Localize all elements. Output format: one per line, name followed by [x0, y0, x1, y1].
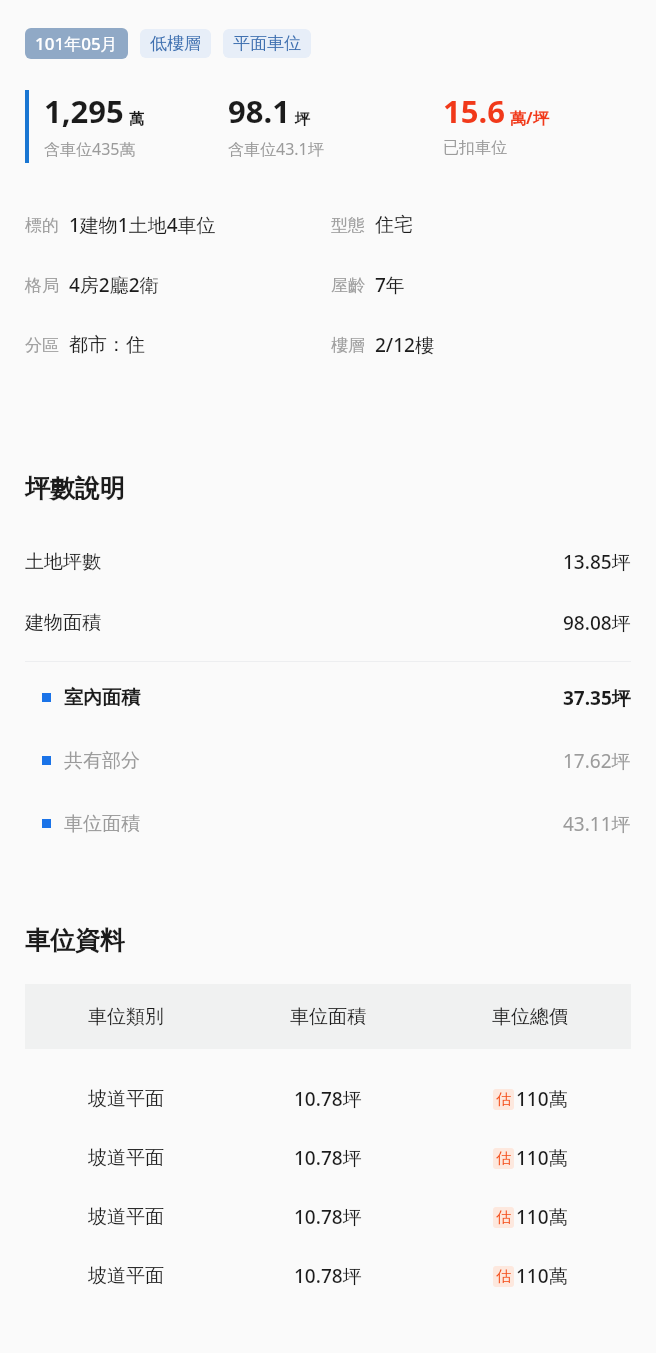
staticText: 4房2廳2衛 [69, 272, 159, 298]
staticText: 分區 [25, 335, 59, 356]
staticText: 7年 [375, 272, 405, 298]
staticText: 屋齡 [331, 275, 365, 296]
staticText: 萬/坪 [510, 107, 549, 129]
button[interactable]: 坡道平面 [25, 1246, 631, 1305]
staticText: 110萬 [516, 1204, 568, 1230]
staticText: 坪數說明 [25, 473, 125, 504]
button[interactable]: 平面車位 [223, 29, 311, 58]
staticText: 15.6 [443, 90, 505, 132]
staticText: 車位資料 [25, 925, 125, 956]
staticText: 共有部分 [64, 749, 140, 773]
staticText: 10.78坪 [294, 1263, 362, 1289]
button[interactable]: 坡道平面 [25, 1128, 631, 1187]
button[interactable]: 坡道平面 [25, 1069, 631, 1128]
staticText: 低樓層 [150, 33, 201, 54]
staticText: 110萬 [516, 1145, 568, 1171]
staticText: 都市：住 [69, 333, 145, 357]
staticText: 1建物1土地4車位 [69, 212, 216, 238]
staticText: 估 [496, 1208, 511, 1227]
staticText: 估 [496, 1149, 511, 1168]
staticText: 17.62坪 [563, 748, 631, 774]
button[interactable]: 101年05月 [25, 28, 128, 59]
staticText: 13.85坪 [563, 549, 631, 575]
staticText: 樓層 [331, 335, 365, 356]
staticText: 車位面積 [290, 1005, 366, 1029]
staticText: 估 [496, 1267, 511, 1286]
staticText: 格局 [25, 275, 59, 296]
staticText: 已扣車位 [443, 138, 507, 158]
staticText: 37.35坪 [563, 685, 631, 711]
staticText: 室內面積 [64, 686, 140, 710]
staticText: 建物面積 [25, 611, 101, 635]
staticText: 10.78坪 [294, 1145, 362, 1171]
staticText: 10.78坪 [294, 1086, 362, 1112]
staticText: 車位面積 [64, 812, 140, 836]
staticText: 萬 [129, 110, 144, 129]
staticText: 平面車位 [233, 33, 301, 54]
staticText: 10.78坪 [294, 1204, 362, 1230]
button[interactable]: 坡道平面 [25, 1187, 631, 1246]
button[interactable]: 低樓層 [140, 29, 211, 58]
staticText: 110萬 [516, 1086, 568, 1112]
staticText: 住宅 [375, 213, 413, 237]
staticText: 坡道平面 [88, 1205, 164, 1229]
staticText: 110萬 [516, 1263, 568, 1289]
staticText: 98.1 [228, 90, 290, 132]
staticText: 101年05月 [35, 32, 118, 55]
staticText: 坪 [295, 110, 310, 129]
staticText: 標的 [25, 215, 59, 236]
staticText: 車位總價 [492, 1005, 568, 1029]
staticText: 1,295 [44, 90, 124, 132]
staticText: 坡道平面 [88, 1146, 164, 1170]
staticText: 坡道平面 [88, 1087, 164, 1111]
staticText: 43.11坪 [563, 811, 631, 837]
staticText: 坡道平面 [88, 1264, 164, 1288]
staticText: 估 [496, 1090, 511, 1109]
staticText: 2/12樓 [375, 332, 434, 358]
staticText: 車位類別 [88, 1005, 164, 1029]
staticText: 型態 [331, 215, 365, 236]
staticText: 含車位435萬 [44, 138, 136, 160]
staticText: 含車位43.1坪 [228, 138, 324, 160]
staticText: 土地坪數 [25, 550, 101, 574]
staticText: 98.08坪 [563, 610, 631, 636]
